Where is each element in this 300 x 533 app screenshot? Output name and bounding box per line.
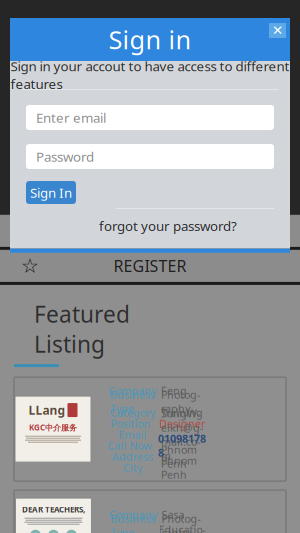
staticText: Sign in your accout to have access to di… [10,57,289,93]
staticText: LOGIN [125,220,174,241]
staticText: Category [110,405,155,420]
staticText: 010981788 [158,431,206,460]
button[interactable]: ☆ [0,250,300,282]
button[interactable]: Close [269,23,286,38]
staticText: Business Type [110,511,155,533]
staticText: Address [112,449,153,464]
button[interactable]: ➜ [0,215,300,247]
staticText: Photography [161,511,200,533]
staticText: LLang [28,402,65,418]
staticText: SongWeikh@gmail.com [161,406,203,463]
staticText: Designer [159,416,205,431]
staticText: Training [161,405,203,420]
staticText: Call Now [107,438,151,453]
button[interactable]: Enter email [26,105,274,130]
staticText: Password [36,148,94,165]
staticText: Enter email [36,109,106,126]
staticText: ☆ [21,254,39,277]
button[interactable]: forgot your password? [99,217,237,235]
staticText: Feng [161,383,187,398]
staticText: Business Type [110,387,155,416]
staticText: Email [118,427,146,442]
staticText: REGISTER [113,255,186,276]
staticText: Phnom Penh [161,453,197,482]
staticText: Sasa [161,507,184,522]
staticText: KGC中介服务 [29,422,77,433]
staticText: Phnom Penh [161,442,197,471]
staticText: Company [109,507,157,522]
staticText: Position [110,416,150,431]
button[interactable]: Sign In [26,181,76,204]
staticText: Sign In [30,184,72,201]
staticText: Sign in [108,23,191,56]
staticText: Category [107,529,152,533]
staticText: City [123,460,142,475]
button[interactable]: DEAR TEACHERS, [14,490,286,533]
staticText: forgot your password? [99,217,237,235]
staticText: DEAR TEACHERS, [22,504,85,515]
button[interactable]: LLang [14,377,286,481]
staticText: Photography [161,387,200,416]
staticText: Company [108,383,156,398]
staticText: Educations [158,522,205,533]
button[interactable]: Password [26,144,274,169]
staticText: ✕ [272,23,283,38]
staticText: Featured Listing [34,299,130,359]
